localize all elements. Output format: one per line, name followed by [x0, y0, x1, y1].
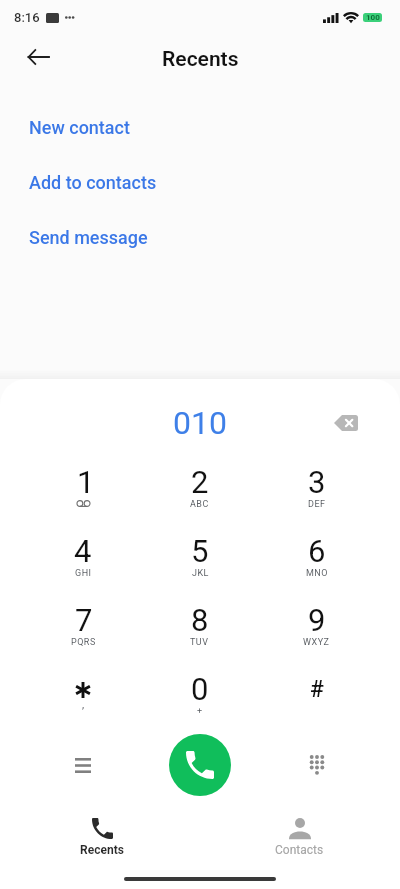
staticText: Recents	[162, 47, 239, 72]
button[interactable]: New contact	[0, 103, 400, 151]
button[interactable]: Call	[169, 734, 231, 796]
button[interactable]: 0	[141, 673, 258, 742]
button[interactable]: ,	[25, 673, 141, 742]
staticText: 8:16	[14, 10, 40, 25]
staticText: 1	[77, 464, 95, 500]
staticText: 010	[173, 404, 227, 442]
button[interactable]: Backspace	[324, 401, 368, 445]
staticText: PQRS	[71, 637, 96, 648]
button[interactable]: 5	[141, 535, 258, 604]
staticText: 2	[191, 464, 209, 500]
button[interactable]: #	[258, 673, 375, 742]
staticText: TUV	[190, 637, 209, 648]
button[interactable]: Dialpad	[258, 725, 375, 805]
staticText: GHI	[75, 568, 92, 579]
button[interactable]: 3	[258, 466, 375, 535]
staticText: WXYZ	[303, 637, 330, 648]
staticText: DEF	[308, 499, 326, 510]
staticText: 3	[308, 464, 326, 500]
button[interactable]: 4	[25, 535, 141, 604]
button[interactable]: 6	[258, 535, 375, 604]
staticText: ABC	[190, 499, 209, 510]
button[interactable]: Add to contacts	[0, 158, 400, 206]
staticText: 6	[308, 533, 326, 569]
staticText: MNO	[306, 568, 328, 579]
button[interactable]: 1	[25, 466, 141, 535]
staticText: #	[310, 676, 324, 703]
staticText: Send message	[29, 227, 148, 248]
button[interactable]: 7	[25, 604, 141, 673]
staticText: 100	[366, 13, 380, 22]
staticText: 7	[75, 602, 93, 638]
button[interactable]: Send message	[0, 213, 400, 261]
staticText: 0	[191, 671, 209, 707]
staticText: Recents	[80, 843, 124, 857]
button[interactable]: Contacts	[200, 815, 400, 889]
staticText: JKL	[192, 568, 209, 579]
staticText: 4	[74, 533, 92, 569]
staticText: ,	[82, 698, 85, 711]
staticText: 9	[308, 602, 326, 638]
button[interactable]: Back	[16, 35, 60, 79]
staticText: Contacts	[275, 843, 324, 857]
button[interactable]: 9	[258, 604, 375, 673]
staticText: Add to contacts	[29, 172, 157, 193]
button[interactable]: 8	[141, 604, 258, 673]
staticText: 5	[191, 533, 209, 569]
button[interactable]: More options	[25, 725, 141, 805]
staticText: +	[197, 706, 203, 717]
staticText: 8	[191, 602, 209, 638]
staticText: New contact	[29, 117, 130, 138]
button[interactable]: 2	[141, 466, 258, 535]
button[interactable]: Recents	[0, 815, 200, 889]
